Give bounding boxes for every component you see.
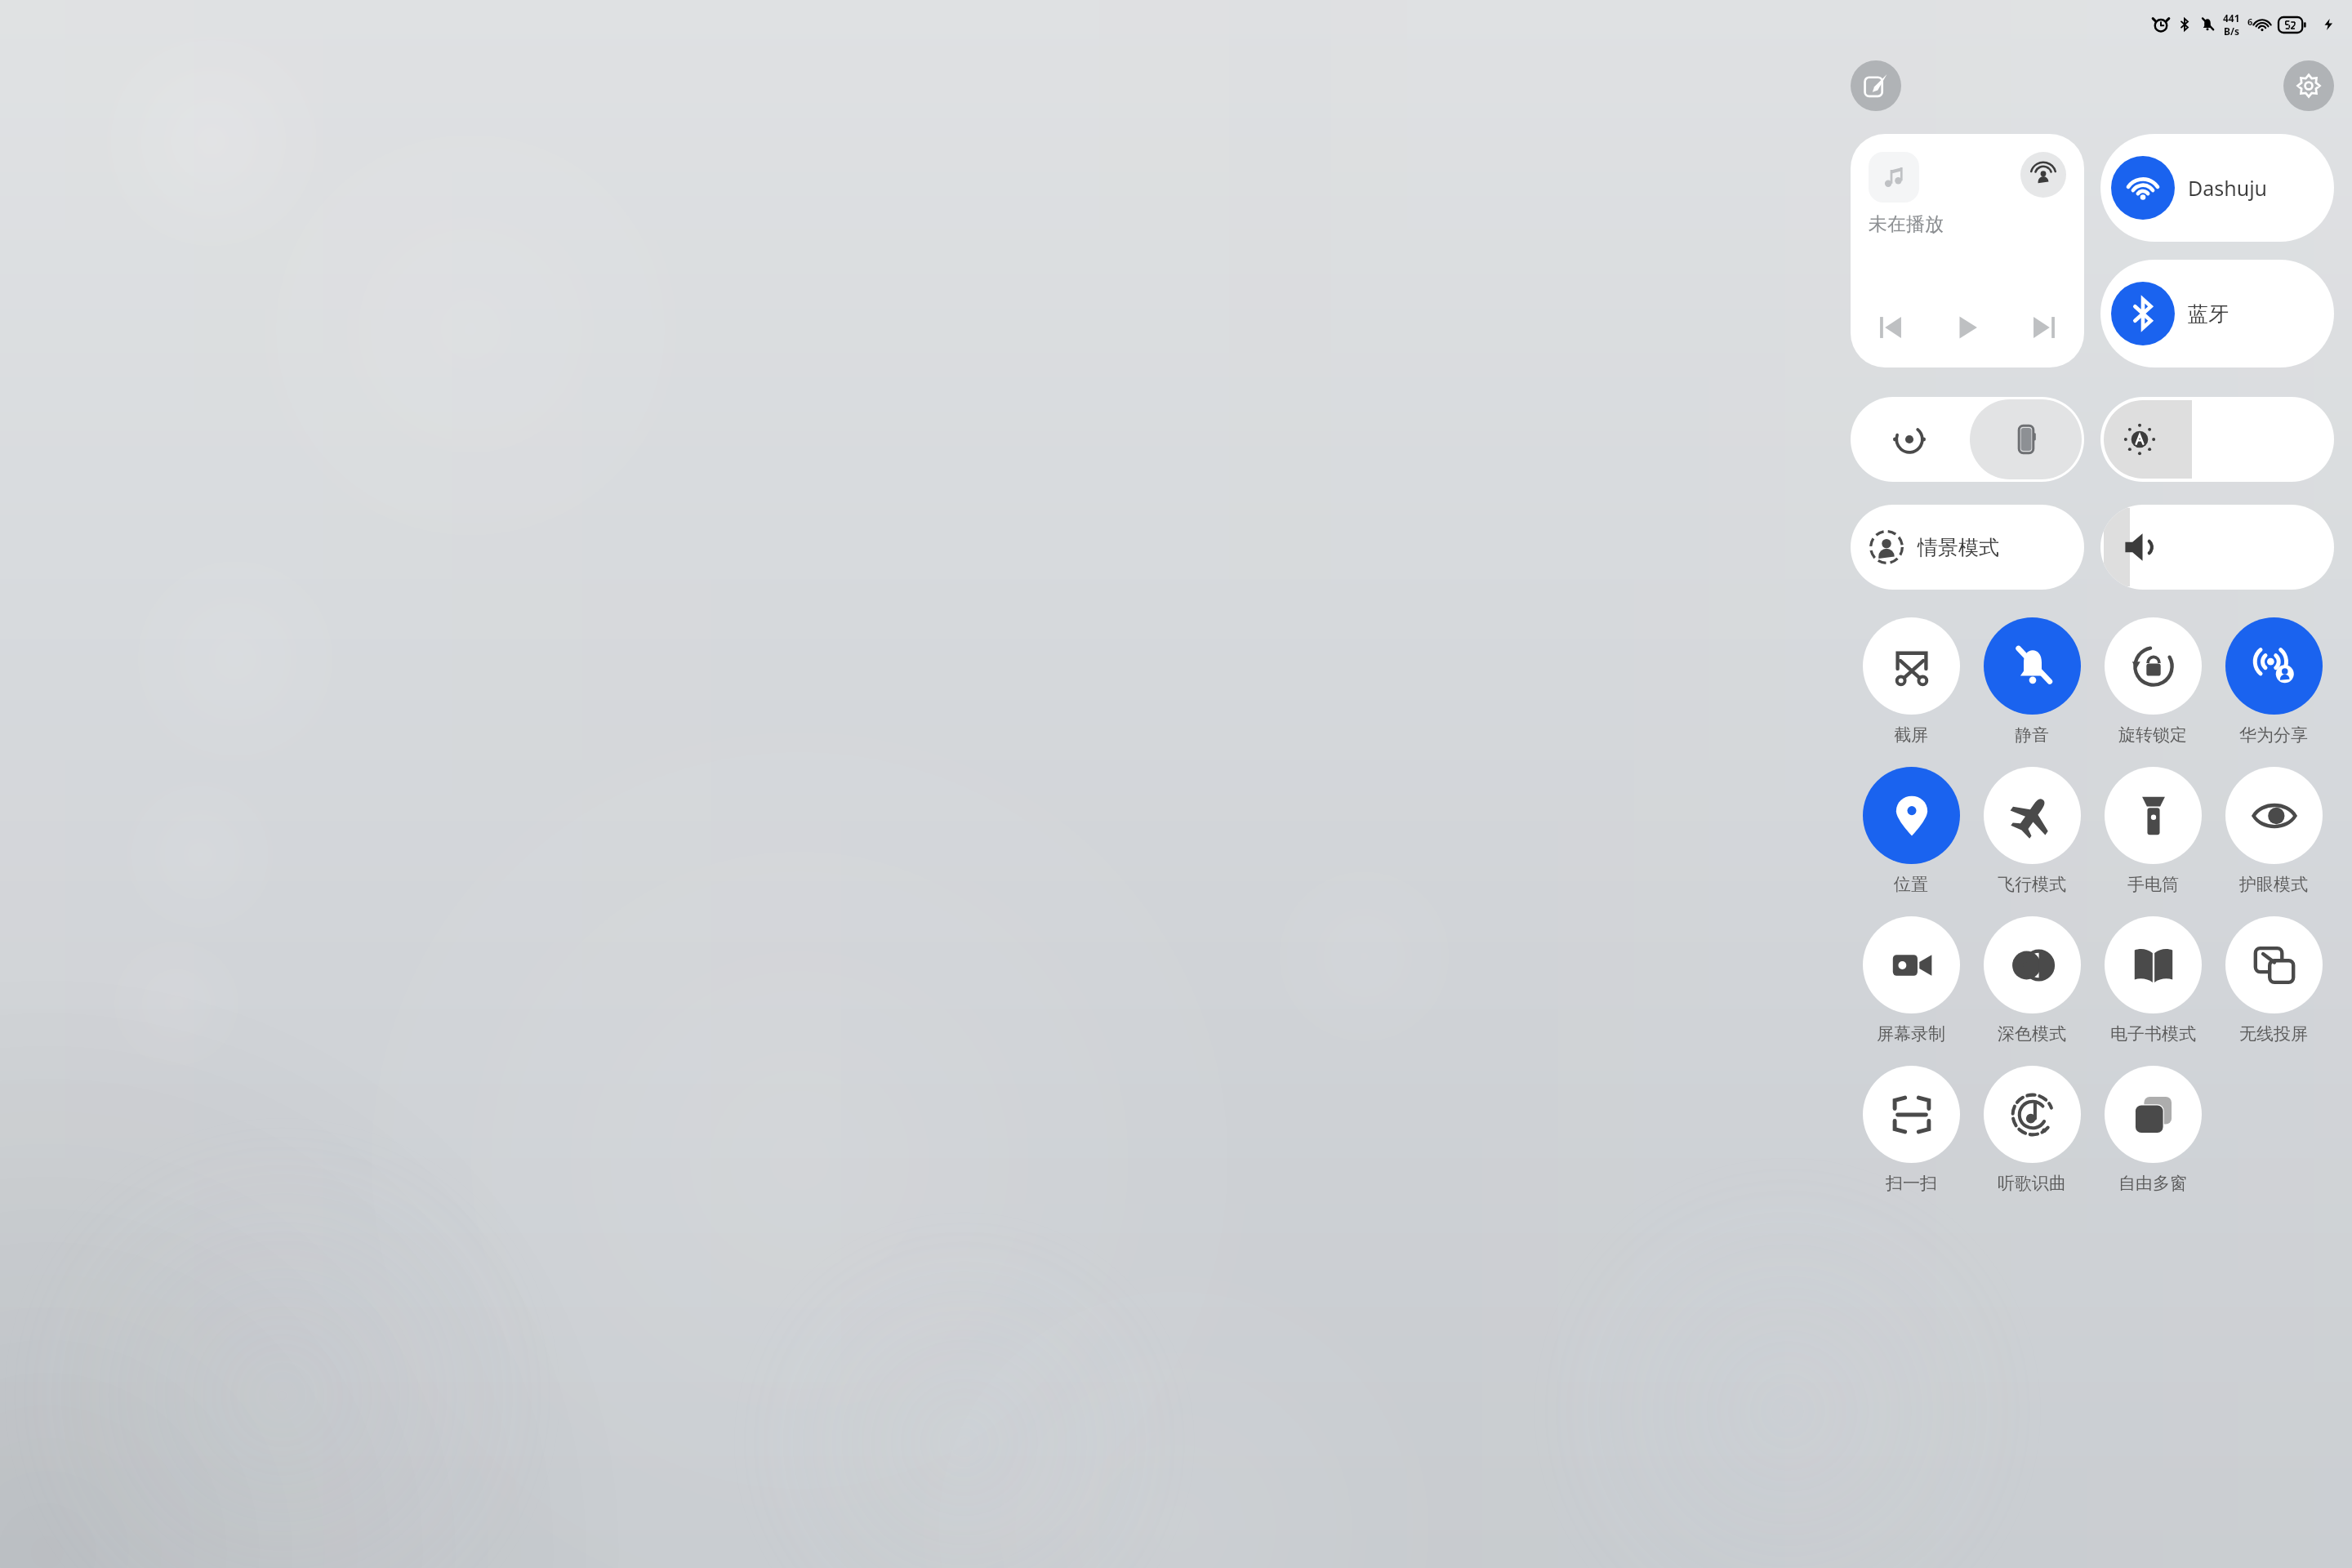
button[interactable]: Cast audio <box>2020 152 2066 198</box>
button[interactable]: Cast audio <box>1851 134 2084 367</box>
staticText: Dashuju <box>2188 174 2268 202</box>
button[interactable]: 电子书模式 <box>2092 915 2213 1046</box>
button[interactable]: 手电筒 <box>2092 765 2213 897</box>
button[interactable]: Dashuju <box>2100 134 2334 242</box>
staticText: B/s <box>2224 24 2239 38</box>
button[interactable]: 旋转锁定 <box>2092 616 2213 747</box>
button[interactable]: 静音 <box>1971 616 2092 747</box>
button[interactable]: Next <box>2022 305 2066 350</box>
button[interactable]: 情景模式 <box>1851 505 2084 590</box>
button[interactable]: 无线投屏 <box>2213 915 2334 1046</box>
button[interactable]: 扫一扫 <box>1851 1064 1971 1196</box>
staticText: 自由多窗 <box>2118 1173 2187 1194</box>
staticText: 深色模式 <box>1998 1023 2066 1045</box>
button[interactable]: Play <box>1945 305 1989 350</box>
button[interactable]: 屏幕录制 <box>1851 915 1971 1046</box>
staticText: 屏幕录制 <box>1877 1023 1945 1045</box>
staticText: 电子书模式 <box>2110 1023 2196 1045</box>
staticText: 441 <box>2223 11 2240 24</box>
button[interactable]: Volume <box>2100 505 2334 590</box>
button[interactable]: Settings <box>2283 60 2334 111</box>
staticText: 华为分享 <box>2239 724 2308 746</box>
staticText: 飞行模式 <box>1998 874 2066 895</box>
button[interactable]: 深色模式 <box>1971 915 2092 1046</box>
button[interactable]: 华为分享 <box>2213 616 2334 747</box>
staticText: 截屏 <box>1894 724 1928 746</box>
button[interactable]: 蓝牙 <box>2100 260 2334 367</box>
staticText: 蓝牙 <box>2188 301 2229 327</box>
staticText: 手电筒 <box>2127 874 2179 895</box>
button[interactable]: Edit controls <box>1851 60 1901 111</box>
staticText: 护眼模式 <box>2239 874 2308 895</box>
button[interactable]: 听歌识曲 <box>1971 1064 2092 1196</box>
button[interactable]: 护眼模式 <box>2213 765 2334 897</box>
button[interactable]: Auto rotate <box>1851 397 2084 482</box>
staticText: 静音 <box>2015 724 2049 746</box>
staticText: 位置 <box>1894 874 1928 895</box>
button[interactable]: 位置 <box>1851 765 1971 897</box>
staticText: 听歌识曲 <box>1998 1173 2066 1194</box>
staticText: 无线投屏 <box>2239 1023 2308 1045</box>
staticText: 扫一扫 <box>1886 1173 1937 1194</box>
button[interactable]: 自由多窗 <box>2092 1064 2213 1196</box>
staticText: 情景模式 <box>1918 535 1999 560</box>
button[interactable]: 截屏 <box>1851 616 1971 747</box>
button[interactable]: 飞行模式 <box>1971 765 2092 897</box>
staticText: 6 <box>2247 16 2253 28</box>
button[interactable]: Brightness <box>2100 397 2334 482</box>
button[interactable]: Previous <box>1869 305 1913 350</box>
staticText: 未在播放 <box>1869 212 1944 236</box>
staticText: 旋转锁定 <box>2118 724 2187 746</box>
